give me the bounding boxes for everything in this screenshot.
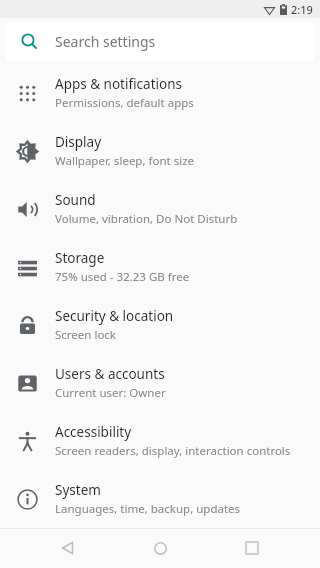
button[interactable]: Users & accounts (0, 354, 320, 412)
button[interactable]: Back (44, 528, 92, 568)
button[interactable]: Sound (0, 180, 320, 238)
staticText: 75% used - 32.23 GB free (55, 269, 190, 285)
staticText: Search settings (55, 32, 156, 51)
button[interactable]: Recent apps (228, 528, 276, 568)
button[interactable]: Display (0, 122, 320, 180)
staticText: Screen readers, display, interaction con… (55, 443, 291, 459)
staticText: 2:19 (291, 2, 313, 17)
button[interactable]: Security & location (0, 296, 320, 354)
button[interactable]: Home (136, 528, 184, 568)
staticText: Storage (55, 249, 105, 267)
button[interactable]: Search settings (6, 21, 314, 61)
staticText: Permissions, default apps (55, 95, 194, 111)
staticText: Accessibility (55, 423, 132, 441)
staticText: Languages, time, backup, updates (55, 501, 241, 517)
staticText: Security & location (55, 307, 174, 325)
button[interactable]: System (0, 470, 320, 528)
staticText: System (55, 481, 101, 499)
staticText: Apps & notifications (55, 75, 182, 93)
staticText: Volume, vibration, Do Not Disturb (55, 211, 238, 227)
staticText: Sound (55, 191, 96, 209)
staticText: Wallpaper, sleep, font size (55, 153, 195, 169)
button[interactable]: Accessibility (0, 412, 320, 470)
button[interactable]: Apps & notifications (0, 64, 320, 122)
staticText: Current user: Owner (55, 385, 166, 401)
staticText: Display (55, 133, 102, 151)
button[interactable]: Storage (0, 238, 320, 296)
staticText: Screen lock (55, 327, 117, 343)
staticText: Users & accounts (55, 365, 165, 383)
